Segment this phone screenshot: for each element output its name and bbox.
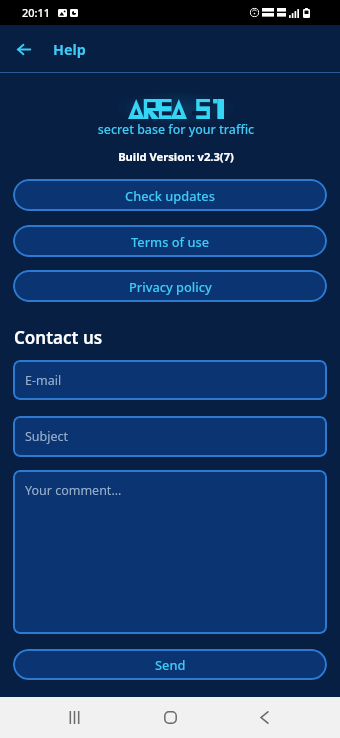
button[interactable]: Back — [0, 25, 46, 73]
staticText: Help — [53, 40, 86, 59]
staticText: Send — [155, 656, 186, 673]
button[interactable]: Subject — [13, 416, 327, 457]
button[interactable]: Back — [240, 697, 288, 738]
button[interactable]: E-mail — [13, 360, 327, 400]
staticText: E-mail — [25, 372, 62, 389]
button[interactable]: Check updates — [13, 179, 327, 211]
button[interactable]: Terms of use — [13, 225, 327, 257]
staticText: 20:11 — [22, 5, 51, 20]
staticText: Check updates — [125, 187, 215, 204]
button[interactable]: Home — [146, 697, 194, 738]
staticText: secret base for your traffic — [6, 121, 340, 138]
button[interactable]: Send — [13, 649, 327, 680]
staticText: Terms of use — [131, 233, 210, 250]
button[interactable]: Your comment... — [13, 470, 327, 634]
staticText: Privacy policy — [129, 278, 212, 295]
staticText: Build Version: v2.3(7) — [6, 149, 340, 164]
staticText: Contact us — [14, 326, 103, 349]
staticText: Subject — [25, 428, 69, 445]
button[interactable]: Privacy policy — [13, 270, 327, 302]
button[interactable]: Recent apps — [50, 697, 98, 738]
staticText: Your comment... — [25, 482, 122, 499]
